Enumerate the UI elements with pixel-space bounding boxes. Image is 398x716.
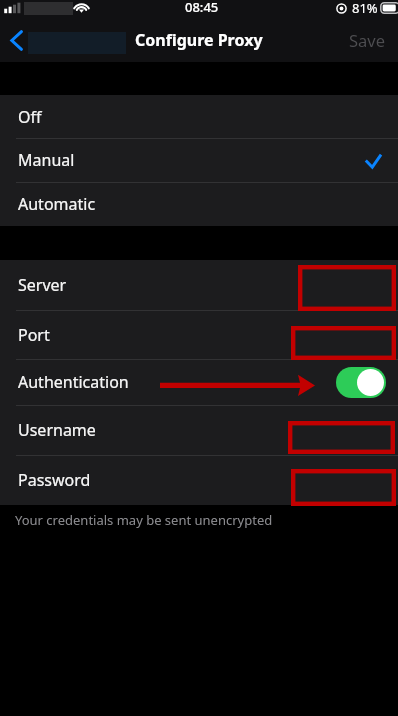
staticText: Port (18, 324, 50, 346)
button[interactable]: Save (331, 22, 398, 62)
staticText: Server (18, 274, 67, 296)
button[interactable]: Password (0, 455, 398, 505)
button[interactable]: Off (0, 95, 398, 138)
button[interactable]: Authentication toggle (336, 367, 386, 398)
staticText: 81% (352, 0, 378, 17)
staticText: Manual (18, 149, 75, 171)
staticText: Save (349, 29, 386, 51)
staticText: Configure Proxy (135, 29, 263, 51)
staticText: Password (18, 469, 91, 491)
staticText: Off (18, 106, 42, 128)
button[interactable]: Manual (0, 138, 398, 182)
button[interactable]: Username (0, 405, 398, 455)
staticText: Automatic (18, 193, 96, 215)
button[interactable]: Port (0, 310, 398, 359)
button[interactable]: Automatic (0, 182, 398, 226)
button[interactable]: Authentication (0, 359, 398, 405)
staticText: Authentication (18, 371, 129, 393)
button[interactable]: Back (0, 22, 111, 62)
staticText: Username (18, 419, 96, 441)
staticText: Your credentials may be sent unencrypted (15, 511, 273, 529)
staticText: 08:45 (185, 0, 219, 16)
button[interactable]: Server (0, 260, 398, 310)
